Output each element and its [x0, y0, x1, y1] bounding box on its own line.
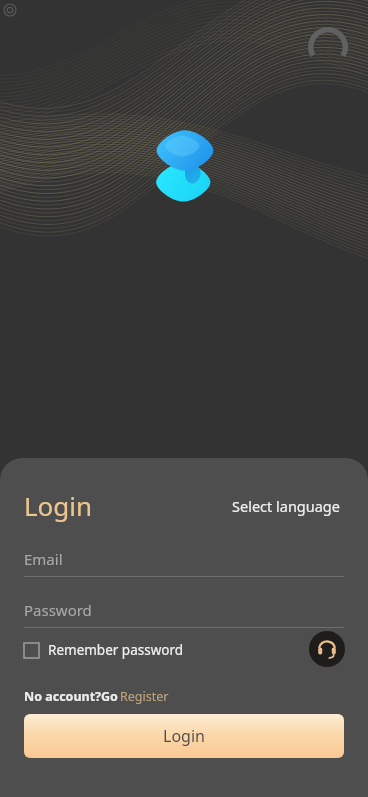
- button[interactable]: Login: [24, 488, 93, 523]
- button[interactable]: Customer service: [309, 631, 345, 667]
- staticText: Login: [24, 488, 93, 523]
- button[interactable]: Refresh: [305, 24, 351, 70]
- staticText: Password: [24, 600, 92, 620]
- button[interactable]: Email: [24, 549, 344, 577]
- staticText: No account?Go: [24, 688, 118, 705]
- other: Badge: [2, 2, 18, 18]
- button[interactable]: Password: [24, 600, 344, 628]
- button[interactable]: Select language: [228, 492, 344, 520]
- staticText: Register: [120, 688, 169, 705]
- staticText: Remember password: [48, 641, 184, 659]
- staticText: Select language: [232, 496, 340, 516]
- button[interactable]: Remember password: [24, 639, 184, 661]
- staticText: Login: [163, 725, 205, 747]
- button[interactable]: Register: [118, 688, 171, 705]
- button[interactable]: Login: [24, 714, 344, 758]
- staticText: Email: [24, 549, 63, 569]
